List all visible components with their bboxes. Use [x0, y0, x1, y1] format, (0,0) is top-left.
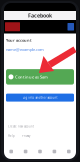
staticText: Facebook [28, 12, 52, 19]
button[interactable]: Continue as Sam [6, 69, 74, 85]
staticText: Log into another account [22, 96, 57, 99]
button[interactable]: Friends [18, 150, 33, 153]
staticText: Privacy [22, 134, 30, 138]
button[interactable]: Menu [62, 150, 76, 153]
staticText: Create new account [8, 125, 34, 128]
button[interactable]: Watch [33, 150, 47, 153]
staticText: Your account [6, 37, 32, 43]
button[interactable]: Log into another account [6, 94, 74, 102]
staticText: Help [8, 134, 15, 138]
staticText: Continue as Sam [15, 74, 48, 79]
staticText: name@example.com [6, 47, 44, 52]
button[interactable]: Notifications [47, 150, 62, 153]
button[interactable]: Home [4, 150, 18, 153]
